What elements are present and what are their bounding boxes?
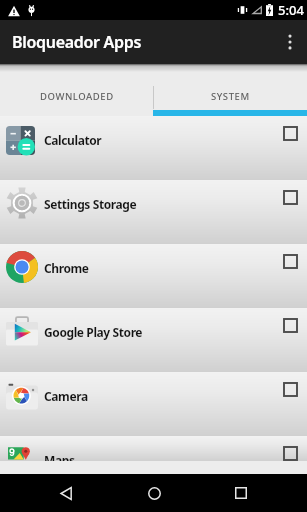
staticText: Bloqueador Apps — [12, 31, 142, 53]
button[interactable]: Recent apps — [219, 474, 263, 512]
button[interactable]: Calculator — [0, 116, 307, 180]
button[interactable]: Google Play Store — [0, 308, 307, 372]
staticText: SYSTEM — [211, 90, 250, 103]
staticText: Settings Storage — [44, 196, 137, 212]
button[interactable]: SYSTEM — [154, 64, 307, 116]
button[interactable]: Camera — [0, 372, 307, 436]
staticText: Calculator — [44, 132, 102, 148]
button[interactable]: Maps — [0, 436, 307, 461]
button[interactable]: Chrome — [0, 244, 307, 308]
staticText: DOWNLOADED — [40, 90, 114, 103]
button[interactable]: Home — [132, 474, 176, 512]
staticText: Maps — [44, 452, 75, 461]
staticText: Google Play Store — [44, 324, 143, 340]
button[interactable]: Back — [44, 474, 88, 512]
staticText: Camera — [44, 388, 88, 404]
button[interactable]: DOWNLOADED — [0, 64, 153, 116]
button[interactable]: Settings Storage — [0, 180, 307, 244]
button[interactable]: More options — [273, 20, 307, 64]
staticText: 5:04 — [278, 1, 304, 19]
staticText: Chrome — [44, 260, 89, 276]
